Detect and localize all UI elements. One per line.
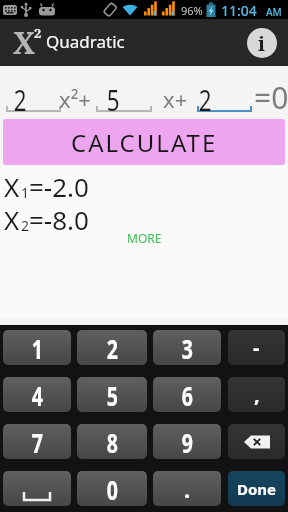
staticText: MORE (127, 230, 162, 246)
staticText: i (258, 30, 266, 57)
button[interactable]: 2 (197, 68, 252, 114)
button[interactable]: 8 (77, 424, 147, 459)
staticText: CALCULATE (71, 126, 218, 159)
staticText: Quadratic (46, 30, 125, 53)
button[interactable]: 5 (77, 377, 147, 412)
staticText: 1 (32, 330, 43, 365)
staticText: 3 (182, 330, 193, 365)
staticText: X (13, 22, 35, 63)
staticText: X (4, 202, 20, 237)
button[interactable]: 9 (153, 424, 221, 459)
staticText: 2 (107, 330, 118, 365)
staticText: AM (266, 5, 282, 19)
button[interactable]: MORE (127, 230, 162, 246)
staticText: 5 (107, 79, 120, 119)
staticText: 0 (107, 471, 118, 506)
staticText: =-2.0 (29, 169, 89, 204)
button[interactable]: CALCULATE (3, 119, 285, 165)
button[interactable]: - (228, 330, 285, 365)
staticText: 4 (32, 377, 43, 412)
button[interactable]: 6 (153, 377, 221, 412)
button[interactable]: . (153, 471, 221, 506)
staticText: 8 (107, 424, 118, 459)
staticText: 5 (107, 377, 118, 412)
staticText: 2 (34, 24, 42, 42)
staticText: 2 (199, 79, 212, 119)
button[interactable] (3, 471, 71, 506)
button[interactable]: 4 (3, 377, 71, 412)
staticText: Done (237, 479, 277, 499)
staticText: 7 (32, 424, 43, 459)
button[interactable]: 0 (77, 471, 147, 506)
button[interactable]: 7 (3, 424, 71, 459)
button[interactable]: 1 (3, 330, 71, 365)
staticText: 1 (21, 183, 30, 202)
button[interactable]: 2 (77, 330, 147, 365)
staticText: x+ (163, 84, 188, 114)
button[interactable]: Done (228, 471, 285, 506)
staticText: X (4, 169, 20, 204)
staticText: =-8.0 (29, 202, 89, 237)
staticText: 6 (182, 377, 193, 412)
button[interactable]: , (228, 377, 285, 412)
staticText: 96% (181, 3, 203, 18)
button[interactable]: 2 (6, 68, 61, 114)
staticText: 11:04 (221, 1, 257, 20)
staticText: 2 (21, 216, 30, 235)
button[interactable] (228, 424, 285, 459)
staticText: =0 (254, 77, 288, 118)
staticText: . (184, 474, 191, 504)
staticText: - (253, 334, 260, 361)
button[interactable]: i (247, 28, 277, 58)
staticText: x²+ (59, 84, 91, 114)
button[interactable]: 3 (153, 330, 221, 365)
staticText: 2 (14, 79, 27, 119)
button[interactable]: 5 (96, 68, 152, 114)
staticText: , (254, 381, 260, 408)
staticText: 9 (182, 424, 193, 459)
